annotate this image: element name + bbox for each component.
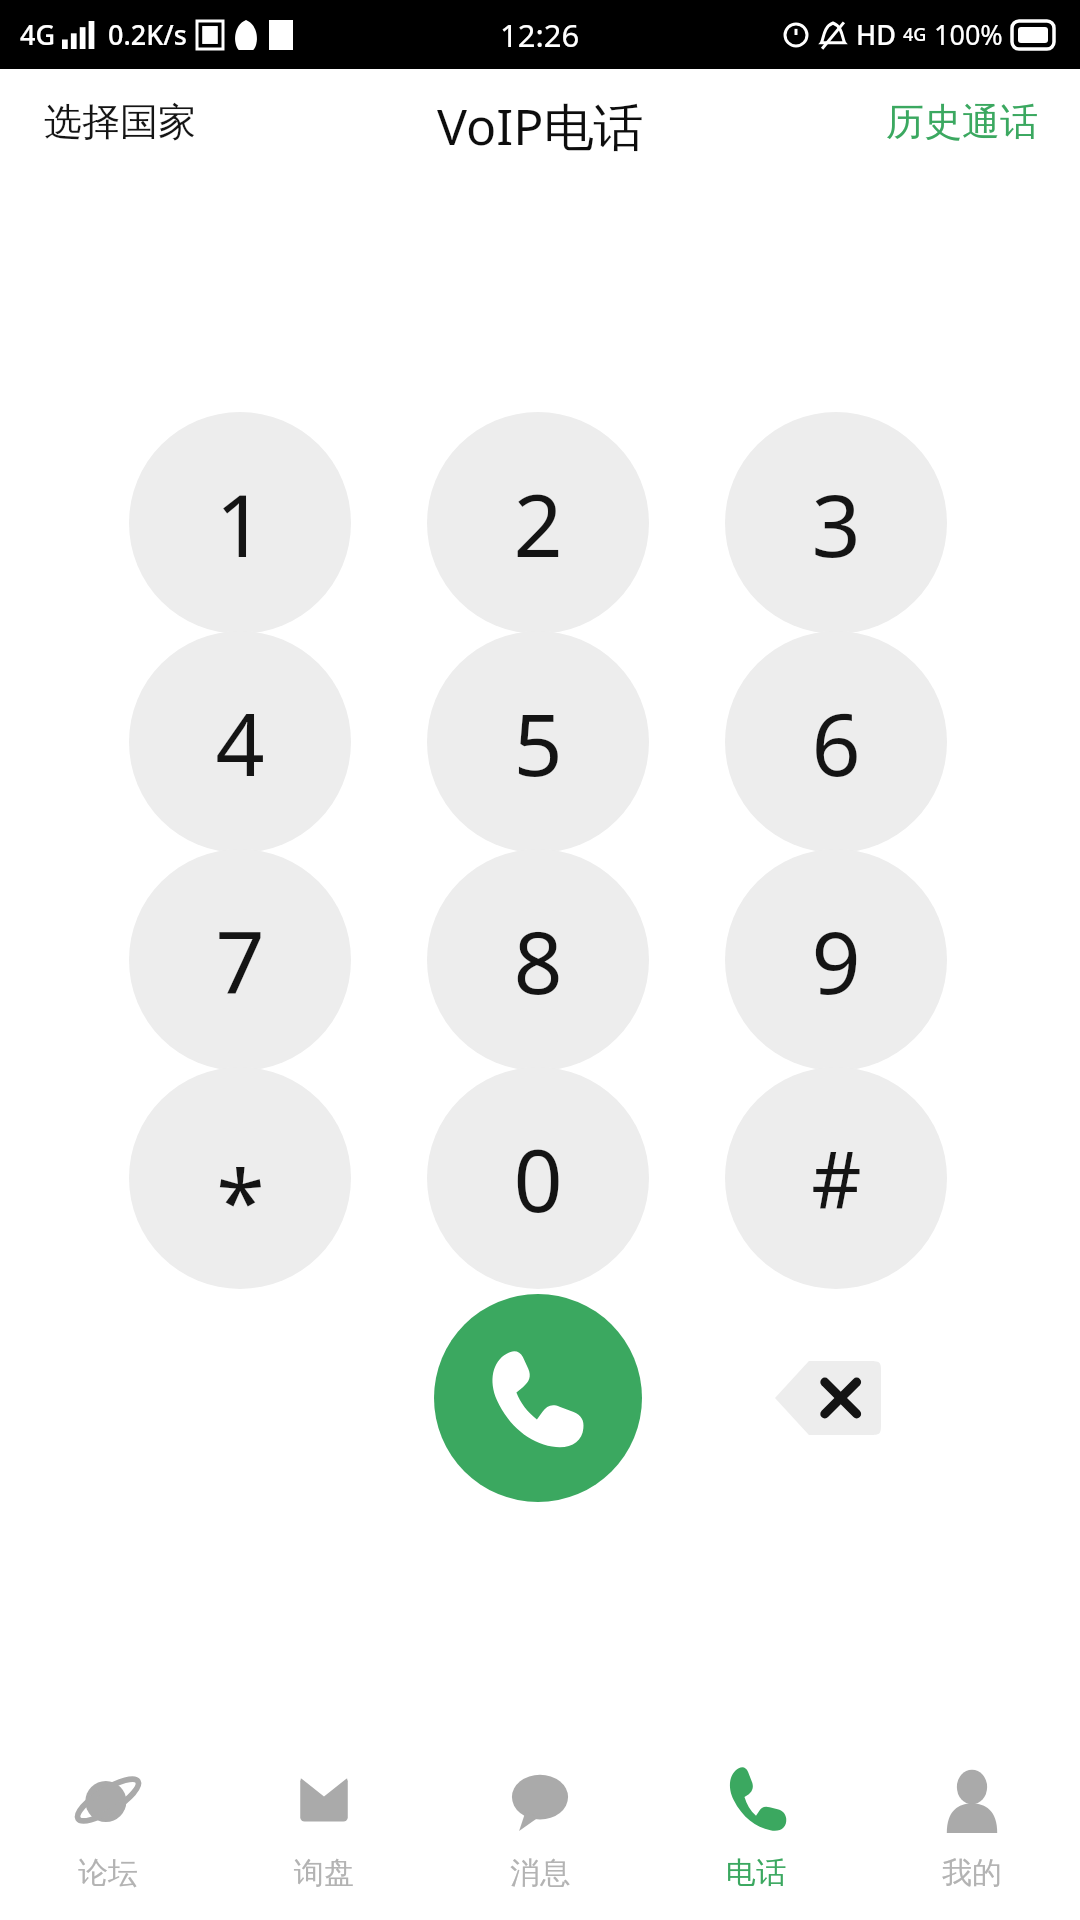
staticText: * — [216, 1140, 265, 1260]
staticText: 12:26 — [500, 14, 580, 56]
staticText: 1 — [215, 465, 265, 582]
staticText: 7 — [215, 902, 265, 1019]
staticText: # — [811, 1125, 862, 1231]
staticText: 0 — [513, 1120, 563, 1237]
staticText: 论坛 — [78, 1854, 138, 1892]
button[interactable]: Delete — [766, 1338, 890, 1458]
button[interactable]: 我的 — [864, 1730, 1080, 1920]
button[interactable]: 询盘 — [216, 1730, 432, 1920]
staticText: 3 — [811, 465, 861, 582]
staticText: 消息 — [510, 1854, 570, 1892]
staticText: 选择国家 — [44, 98, 196, 146]
staticText: 历史通话 — [886, 98, 1038, 146]
button[interactable]: 4 — [129, 631, 351, 853]
button[interactable]: Call — [434, 1294, 642, 1502]
button[interactable]: 2 — [427, 412, 649, 634]
button[interactable]: 8 — [427, 849, 649, 1071]
staticText: 电话 — [726, 1854, 786, 1892]
button[interactable]: # — [725, 1067, 947, 1289]
staticText: 100% — [934, 16, 1003, 53]
staticText: 8 — [513, 902, 563, 1019]
staticText: 0.2K/s — [108, 16, 187, 53]
button[interactable]: 6 — [725, 631, 947, 853]
staticText: 2 — [513, 465, 563, 582]
staticText: 4G — [20, 16, 56, 53]
button[interactable]: 0 — [427, 1067, 649, 1289]
button[interactable]: * — [129, 1067, 351, 1289]
staticText: 4 — [215, 684, 265, 801]
staticText: 9 — [811, 902, 861, 1019]
staticText: 4G — [903, 22, 927, 47]
staticText: HD — [856, 16, 896, 53]
staticText: 6 — [811, 684, 861, 801]
staticText: 询盘 — [294, 1854, 354, 1892]
button[interactable]: 1 — [129, 412, 351, 634]
button[interactable]: 选择国家 — [30, 90, 210, 154]
button[interactable]: 9 — [725, 849, 947, 1071]
button[interactable]: 7 — [129, 849, 351, 1071]
button[interactable]: 消息 — [432, 1730, 648, 1920]
staticText: VoIP电话 — [437, 92, 644, 160]
staticText: 5 — [513, 684, 563, 801]
button[interactable]: 5 — [427, 631, 649, 853]
staticText: 我的 — [942, 1854, 1002, 1892]
button[interactable]: 电话 — [648, 1730, 864, 1920]
button[interactable]: 3 — [725, 412, 947, 634]
button[interactable]: 历史通话 — [872, 90, 1052, 154]
button[interactable]: 论坛 — [0, 1730, 216, 1920]
